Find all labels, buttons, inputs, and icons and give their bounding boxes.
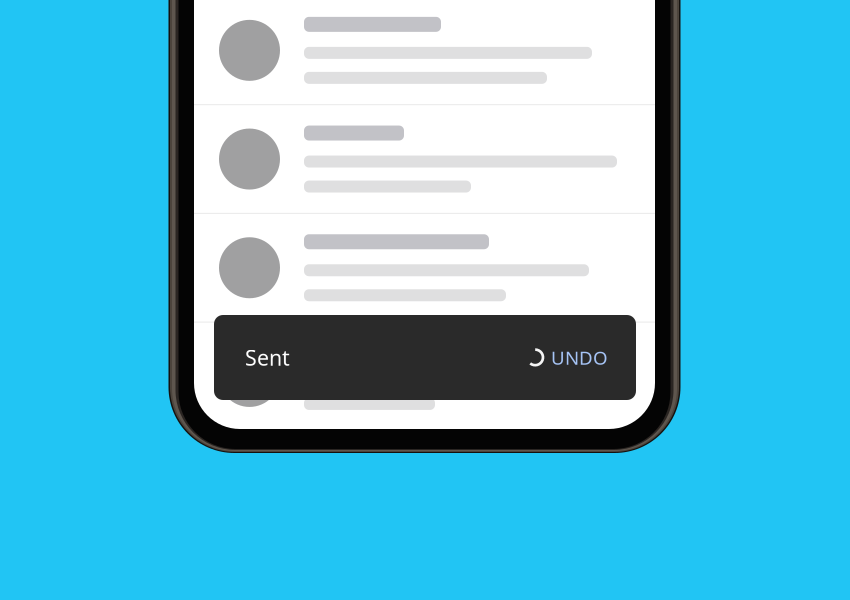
button[interactable]: UNDO — [526, 345, 608, 370]
button[interactable]: Message — [194, 0, 655, 104]
staticText: Sent — [245, 343, 290, 372]
button[interactable]: Message — [194, 323, 655, 430]
button[interactable]: Message — [194, 214, 655, 322]
staticText: UNDO — [551, 345, 608, 370]
button[interactable]: Message — [194, 105, 655, 213]
